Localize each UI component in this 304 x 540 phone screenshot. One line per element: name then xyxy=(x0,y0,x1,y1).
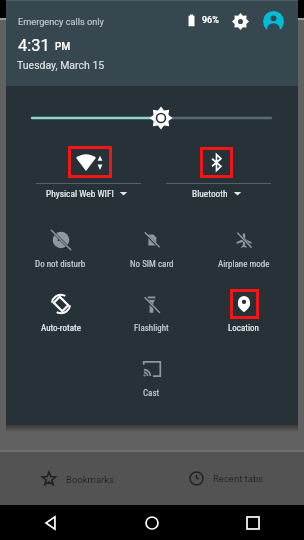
staticText: 96% xyxy=(202,15,219,26)
button[interactable]: Airplane mode xyxy=(198,221,289,269)
button[interactable]: Bookmarks xyxy=(4,452,152,505)
button[interactable]: Flashlight xyxy=(106,285,197,333)
button[interactable]: Home xyxy=(101,505,202,540)
button[interactable]: Bluetooth xyxy=(152,140,282,202)
button[interactable]: Back xyxy=(0,505,101,540)
button[interactable]: Location xyxy=(198,285,289,333)
button[interactable]: Recent tabs xyxy=(152,452,300,505)
staticText: Tuesday, March 15 xyxy=(17,59,105,71)
button[interactable]: No SIM card xyxy=(106,221,197,269)
staticText: Auto-rotate xyxy=(41,323,81,334)
button[interactable]: Cast xyxy=(106,350,197,398)
button[interactable]: User account xyxy=(259,7,287,35)
staticText: Recent tabs xyxy=(213,473,264,484)
button[interactable]: Physical Web WIFI xyxy=(22,140,152,202)
staticText: Location xyxy=(228,323,259,334)
staticText: Do not disturb xyxy=(35,259,86,270)
staticText: Bookmarks xyxy=(66,474,115,485)
staticText: No SIM card xyxy=(130,259,174,270)
staticText: PM xyxy=(55,41,71,53)
staticText: Emergency calls only xyxy=(18,16,104,27)
staticText: 4:31 xyxy=(18,36,50,55)
staticText: Bluetooth xyxy=(192,188,228,199)
button[interactable]: Auto-rotate xyxy=(15,285,106,333)
button[interactable]: Settings xyxy=(227,8,254,35)
staticText: Airplane mode xyxy=(218,259,270,270)
button[interactable]: Recent apps xyxy=(202,505,303,540)
staticText: Cast xyxy=(143,388,160,399)
staticText: Flashlight xyxy=(134,323,169,334)
staticText: Physical Web WIFI xyxy=(46,188,114,199)
button[interactable]: Brightness xyxy=(6,104,298,132)
button[interactable]: Do not disturb xyxy=(15,221,106,269)
